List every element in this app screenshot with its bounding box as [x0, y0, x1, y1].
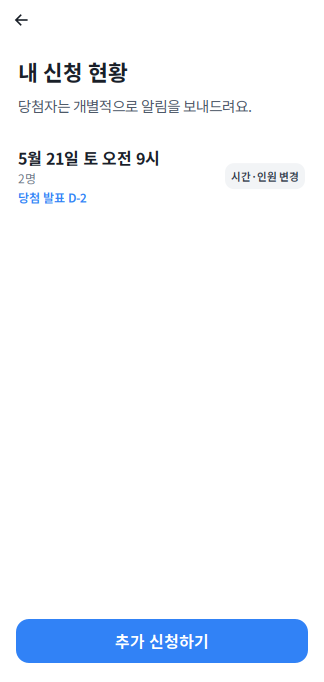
staticText: 5월 21일 토 오전 9시 — [18, 146, 160, 169]
staticText: 시간·인원 변경 — [231, 168, 299, 184]
button[interactable]: Back — [0, 0, 43, 38]
button[interactable]: 추가 신청하기 — [16, 619, 308, 663]
staticText: 당첨자는 개별적으로 알림을 보내드려요. — [18, 95, 252, 116]
staticText: 당첨 발표 D-2 — [18, 189, 87, 206]
staticText: 추가 신청하기 — [115, 629, 209, 653]
button[interactable]: 시간·인원 변경 — [225, 146, 305, 189]
staticText: 내 신청 현황 — [18, 56, 128, 87]
staticText: 2명 — [18, 169, 36, 187]
